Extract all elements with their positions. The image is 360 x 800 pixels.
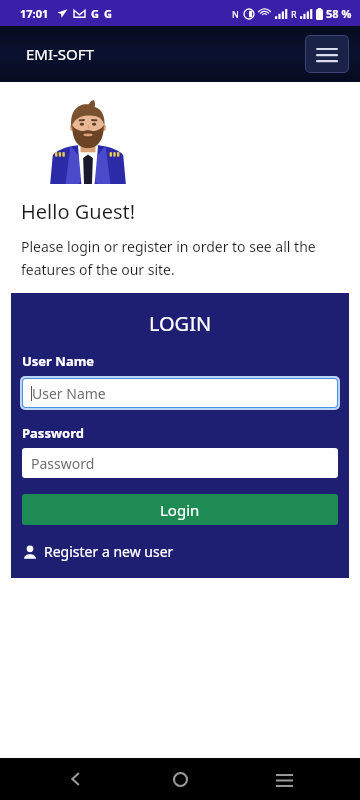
button[interactable]: Home [152, 758, 208, 800]
staticText: N [232, 8, 239, 20]
staticText: Hello Guest! [21, 198, 136, 225]
staticText: Login [160, 500, 200, 520]
button[interactable]: Login [22, 494, 338, 525]
staticText: Password [22, 424, 84, 442]
staticText: 58 % [326, 6, 352, 21]
staticText: R [291, 8, 297, 20]
button[interactable]: User Name [23, 379, 337, 407]
staticText: features of the our site. [21, 260, 175, 279]
staticText: User Name [32, 384, 106, 403]
button[interactable]: Register a new user [22, 542, 174, 561]
button[interactable]: Open navigation menu [305, 35, 349, 73]
staticText: EMI-SOFT [26, 44, 94, 64]
staticText: Register a new user [44, 542, 174, 561]
staticText: Please login or register in order to see… [21, 237, 316, 256]
staticText: G [104, 6, 112, 21]
staticText: LOGIN [11, 310, 349, 337]
staticText: User Name [22, 352, 95, 370]
button[interactable]: Recent apps [256, 758, 312, 800]
button[interactable]: Password [22, 448, 338, 478]
staticText: 17:01 [20, 6, 49, 21]
staticText: Password [31, 454, 95, 473]
button[interactable]: Back [48, 758, 104, 800]
staticText: G [91, 6, 99, 21]
